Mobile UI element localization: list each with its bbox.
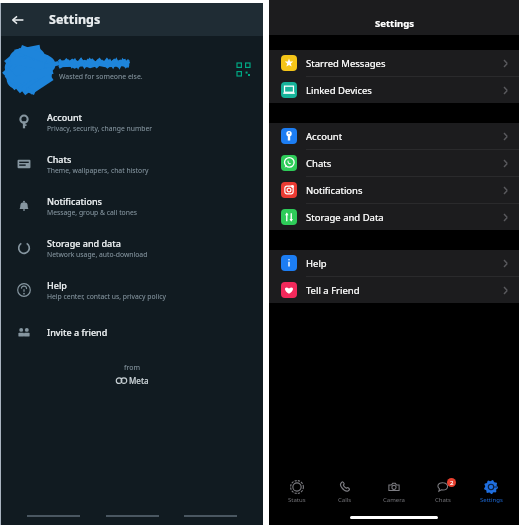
- button[interactable]: Notifications: [1, 185, 263, 227]
- staticText: Account: [306, 130, 343, 143]
- staticText: Tell a Friend: [306, 284, 360, 297]
- button[interactable]: Starred Messages: [269, 50, 519, 76]
- staticText: Settings: [375, 17, 414, 30]
- button[interactable]: Status: [276, 479, 318, 504]
- button[interactable]: Storage and data: [1, 227, 263, 269]
- staticText: Help: [47, 279, 67, 291]
- staticText: Help center, contact us, privacy policy: [47, 292, 166, 301]
- staticText: Storage and data: [47, 237, 121, 249]
- staticText: Notifications: [47, 195, 102, 207]
- button[interactable]: Account: [269, 123, 519, 149]
- button[interactable]: Back: [1, 3, 35, 36]
- staticText: Help: [306, 257, 327, 270]
- staticText: Camera: [383, 496, 405, 504]
- staticText: 2: [450, 479, 454, 487]
- staticText: Theme, wallpapers, chat history: [47, 166, 149, 175]
- staticText: Account: [47, 111, 82, 123]
- staticText: Chats: [306, 157, 332, 170]
- staticText: Chats: [435, 496, 451, 504]
- staticText: from: [124, 363, 140, 373]
- staticText: Privacy, security, change number: [47, 124, 153, 133]
- button[interactable]: Help: [1, 269, 263, 311]
- button[interactable]: 2: [422, 479, 464, 504]
- button[interactable]: Chats: [1, 143, 263, 185]
- button[interactable]: Tell a Friend: [269, 277, 519, 303]
- staticText: Message, group & call tones: [47, 208, 137, 217]
- button[interactable]: Linked Devices: [269, 77, 519, 103]
- button[interactable]: Account: [1, 101, 263, 143]
- staticText: Linked Devices: [306, 84, 372, 97]
- button[interactable]: Storage and Data: [269, 204, 519, 230]
- staticText: Settings: [49, 11, 101, 28]
- staticText: Starred Messages: [306, 57, 386, 70]
- staticText: Settings: [480, 496, 503, 504]
- staticText: Storage and Data: [306, 211, 384, 224]
- button[interactable]: Camera: [373, 479, 415, 504]
- staticText: Wasted for someone else.: [59, 72, 143, 81]
- button[interactable]: Wasted for someone else.: [1, 36, 263, 101]
- button[interactable]: Help: [269, 250, 519, 276]
- staticText: Chats: [47, 153, 72, 165]
- staticText: Calls: [338, 496, 352, 504]
- staticText: Meta: [129, 375, 149, 386]
- staticText: Notifications: [306, 184, 363, 197]
- staticText: Invite a friend: [47, 326, 108, 338]
- staticText: Network usage, auto-download: [47, 250, 148, 259]
- staticText: Status: [288, 496, 306, 504]
- button[interactable]: Chats: [269, 150, 519, 176]
- button[interactable]: Notifications: [269, 177, 519, 203]
- button[interactable]: Calls: [324, 479, 366, 504]
- button[interactable]: QR code: [230, 56, 256, 82]
- button[interactable]: Settings: [470, 479, 512, 504]
- button[interactable]: Invite a friend: [1, 311, 263, 353]
